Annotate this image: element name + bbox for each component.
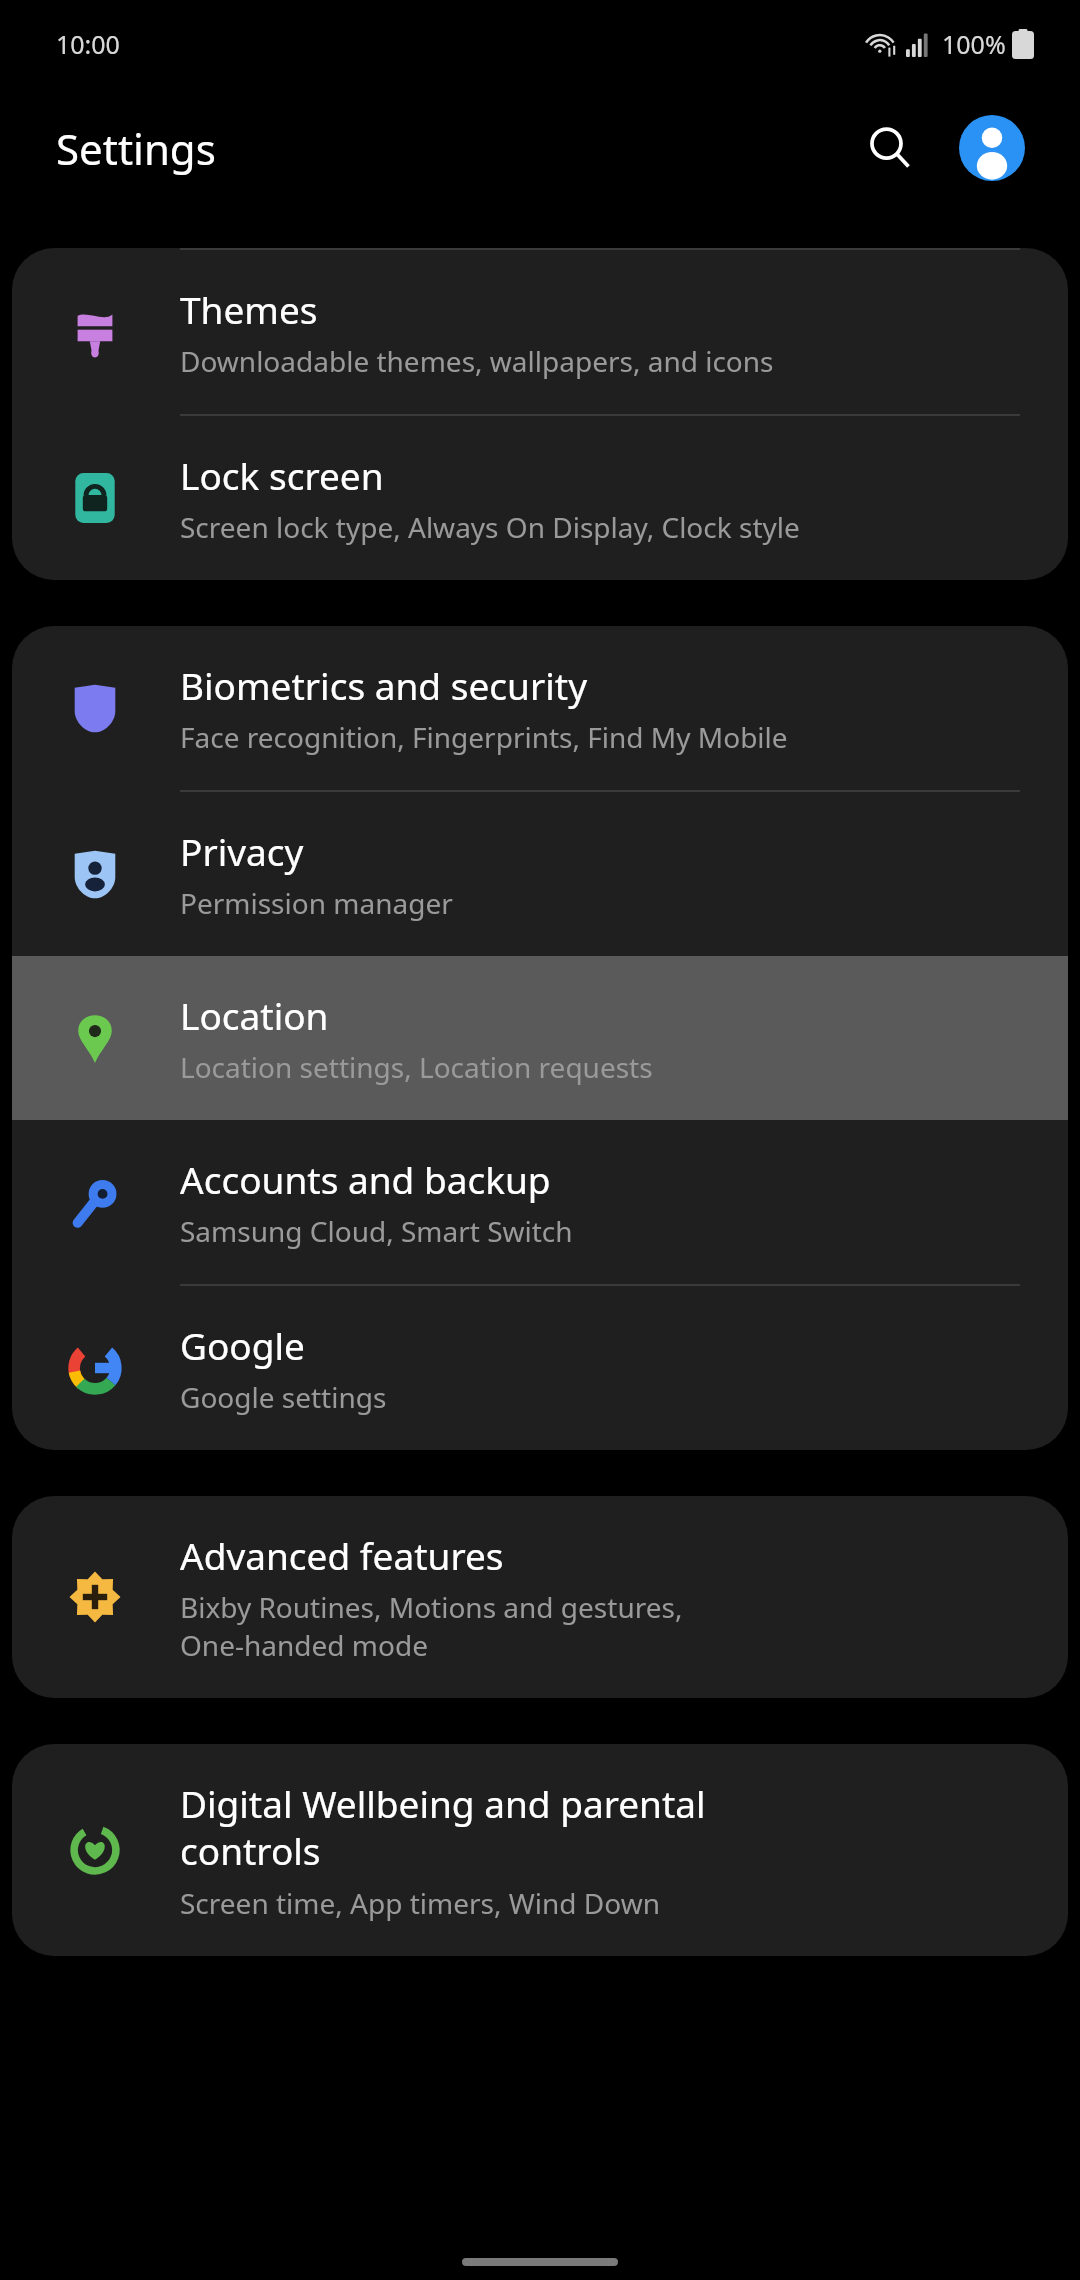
button[interactable]: Search bbox=[846, 104, 934, 192]
staticText: 10:00 bbox=[56, 27, 120, 61]
staticText: Screen time, App timers, Wind Down bbox=[180, 1884, 660, 1922]
staticText: Bixby Routines, Motions and gestures, On… bbox=[180, 1588, 683, 1664]
staticText: Location settings, Location requests bbox=[180, 1048, 653, 1086]
button[interactable]: Themes bbox=[12, 250, 1068, 414]
staticText: 100% bbox=[942, 27, 1006, 61]
button[interactable]: Accounts and backup bbox=[12, 1120, 1068, 1284]
staticText: Location bbox=[180, 990, 329, 1040]
staticText: Samsung Cloud, Smart Switch bbox=[180, 1212, 573, 1250]
button[interactable]: Google bbox=[12, 1286, 1068, 1450]
button[interactable]: Lock screen bbox=[12, 416, 1068, 580]
staticText: Permission manager bbox=[180, 884, 453, 922]
staticText: Downloadable themes, wallpapers, and ico… bbox=[180, 342, 774, 380]
button[interactable]: Digital Wellbeing and parental controls bbox=[12, 1744, 1068, 1956]
staticText: Digital Wellbeing and parental controls bbox=[180, 1778, 706, 1876]
staticText: Accounts and backup bbox=[180, 1154, 551, 1204]
button[interactable]: Privacy bbox=[12, 792, 1068, 956]
staticText: Privacy bbox=[180, 826, 304, 876]
staticText: Screen lock type, Always On Display, Clo… bbox=[180, 508, 800, 546]
button[interactable]: Account bbox=[948, 104, 1036, 192]
button[interactable]: Location bbox=[12, 956, 1068, 1120]
staticText: Face recognition, Fingerprints, Find My … bbox=[180, 718, 788, 756]
staticText: Advanced features bbox=[180, 1530, 504, 1580]
button[interactable]: Biometrics and security bbox=[12, 626, 1068, 790]
staticText: Settings bbox=[56, 120, 216, 177]
staticText: Themes bbox=[180, 284, 318, 334]
button[interactable]: Advanced features bbox=[12, 1496, 1068, 1698]
staticText: Lock screen bbox=[180, 450, 384, 500]
staticText: Google settings bbox=[180, 1378, 387, 1416]
staticText: Google bbox=[180, 1320, 305, 1370]
staticText: Biometrics and security bbox=[180, 660, 587, 710]
